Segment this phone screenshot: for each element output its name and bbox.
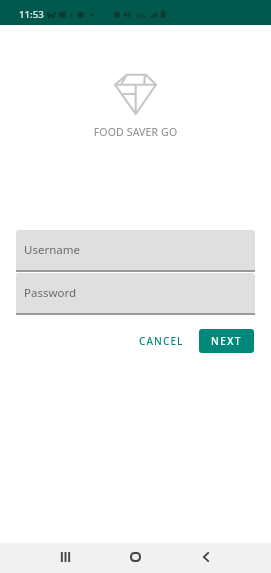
staticText: Password	[24, 285, 77, 301]
staticText: FOOD SAVER GO	[0, 125, 271, 139]
staticText: Username	[24, 242, 80, 258]
staticText: CANCEL	[139, 334, 184, 348]
staticText: 5G	[136, 11, 146, 21]
staticText: NEXT	[211, 334, 242, 348]
button[interactable]: Home	[115, 543, 155, 573]
button[interactable]: NEXT	[199, 329, 254, 353]
button[interactable]: CANCEL	[129, 328, 194, 354]
button[interactable]: Back	[186, 543, 226, 573]
button[interactable]: Password	[16, 273, 255, 313]
staticText: 11:53	[19, 8, 44, 21]
button[interactable]: Username	[16, 230, 255, 270]
button[interactable]: Recent apps	[45, 543, 85, 573]
